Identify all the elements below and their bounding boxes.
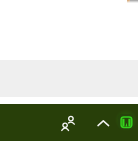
button[interactable]: Expand (92, 111, 114, 133)
button[interactable]: Participants (56, 111, 78, 133)
button[interactable]: Open app (116, 110, 136, 130)
